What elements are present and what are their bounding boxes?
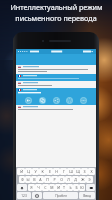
staticText: А (39, 177, 42, 182)
button[interactable]: More (80, 97, 87, 104)
staticText: Ь (69, 185, 72, 190)
button[interactable]: Ж (79, 176, 86, 183)
button[interactable]: Э (86, 176, 93, 183)
staticText: Э (88, 177, 91, 182)
staticText: Т (63, 185, 65, 190)
button[interactable]: Favorite (66, 97, 73, 104)
staticText: В (33, 177, 36, 182)
staticText: Ы (26, 177, 30, 182)
button[interactable]: Numbers (17, 192, 31, 199)
button[interactable]: И (55, 184, 61, 191)
staticText: Л (67, 177, 70, 182)
button[interactable]: Space (43, 192, 78, 199)
staticText: Н (55, 169, 58, 174)
button[interactable]: Emoji (32, 192, 42, 199)
staticText: Щ (76, 169, 80, 174)
button[interactable]: Ю (79, 184, 85, 191)
button[interactable]: Щ (74, 168, 81, 175)
button[interactable]: Й (17, 168, 25, 175)
staticText: Х (90, 169, 93, 174)
button[interactable]: О (58, 176, 65, 183)
staticText: 123 (21, 194, 27, 198)
button[interactable]: В (31, 176, 37, 183)
button[interactable] (16, 81, 96, 88)
staticText: С (44, 185, 47, 190)
staticText: З (83, 169, 86, 174)
staticText: Ввод (83, 194, 91, 198)
staticText: М (50, 185, 54, 190)
button[interactable]: Shift (17, 184, 27, 191)
button[interactable] (16, 65, 96, 74)
button[interactable] (16, 74, 96, 81)
button[interactable]: Р (51, 176, 58, 183)
staticText: И (57, 185, 60, 190)
button[interactable]: Ч (35, 184, 42, 191)
button[interactable] (16, 105, 96, 112)
button[interactable]: Ш (67, 168, 74, 175)
button[interactable]: Backspace (86, 184, 95, 191)
button[interactable]: Ы (25, 176, 31, 183)
staticText: П (46, 177, 49, 182)
button[interactable]: Ф (19, 176, 25, 183)
button[interactable]: П (44, 176, 51, 183)
staticText: Е (49, 169, 51, 174)
button[interactable]: Ь (67, 184, 73, 191)
staticText: К (41, 169, 44, 174)
button[interactable]: Н (53, 168, 60, 175)
staticText: Ц (27, 169, 30, 174)
button[interactable]: Г (60, 168, 67, 175)
button[interactable]: Б (73, 184, 79, 191)
button[interactable]: Speak (25, 97, 32, 104)
button[interactable]: Т (61, 184, 67, 191)
button[interactable]: Enter (79, 192, 95, 199)
staticText: Я (30, 185, 33, 190)
staticText: У (34, 169, 37, 174)
button[interactable]: Х (88, 168, 95, 175)
button[interactable] (16, 88, 96, 95)
button[interactable]: С (42, 184, 49, 191)
staticText: Ж (81, 177, 85, 182)
staticText: Р (53, 177, 56, 182)
staticText: Ю (80, 185, 84, 190)
staticText: Ф (21, 177, 24, 182)
staticText: Г (63, 169, 65, 174)
staticText: Й (20, 169, 23, 174)
button[interactable]: Copy (39, 97, 46, 104)
button[interactable]: Д (72, 176, 79, 183)
staticText: О (60, 177, 63, 182)
button[interactable]: У (32, 168, 39, 175)
staticText: Ш (69, 169, 73, 174)
button[interactable]: М (49, 184, 55, 191)
button[interactable]: Л (65, 176, 72, 183)
button[interactable]: Ц (25, 168, 32, 175)
staticText: Ч (37, 185, 40, 190)
staticText: Б (75, 185, 78, 190)
staticText: Пробел (55, 194, 67, 198)
button[interactable]: А (37, 176, 44, 183)
button[interactable]: Share (53, 97, 60, 104)
button[interactable]: З (81, 168, 88, 175)
button[interactable]: К (39, 168, 46, 175)
staticText: письменного перевода (15, 13, 97, 23)
staticText: Интеллектуальный режим (10, 2, 103, 12)
button[interactable]: Я (28, 184, 35, 191)
staticText: Д (74, 177, 77, 182)
button[interactable]: Е (46, 168, 53, 175)
